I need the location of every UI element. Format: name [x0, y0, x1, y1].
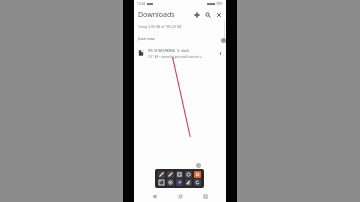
button[interactable]: Close: [215, 11, 223, 19]
button[interactable]: Recents: [201, 192, 210, 201]
button[interactable]: Search: [204, 11, 212, 19]
button[interactable]: Highlighter: [167, 171, 174, 178]
button[interactable]: Sticker: [158, 179, 165, 186]
button[interactable]: Sort: [193, 11, 201, 19]
button[interactable]: 9% VI WORKING V. dark: [134, 45, 226, 61]
staticText: 78%: [216, 2, 223, 6]
button[interactable]: Palette: [176, 179, 183, 186]
staticText: 3.31 kB • mtconfig/personal/content.c...: [148, 55, 204, 59]
button[interactable]: Back: [150, 192, 159, 201]
button[interactable]: Toolbar handle: [196, 163, 201, 168]
staticText: 9% VI WORKING V. dark: [148, 48, 189, 53]
staticText: Using 3.09 GB of 106.29 GB: [138, 24, 182, 29]
staticText: Just now: [138, 36, 155, 42]
button[interactable]: Ellipse: [185, 171, 192, 178]
button[interactable]: Home: [176, 192, 185, 201]
button[interactable]: Undo: [194, 179, 201, 186]
button[interactable]: Rectangle: [176, 171, 183, 178]
button[interactable]: Pen: [158, 171, 165, 178]
button[interactable]: Color: [194, 171, 201, 178]
button[interactable]: Blur: [167, 179, 174, 186]
button[interactable]: Eraser: [185, 179, 192, 186]
button[interactable]: More options: [217, 50, 224, 57]
staticText: 12:34: [137, 2, 146, 6]
staticText: Downloads: [138, 10, 175, 20]
